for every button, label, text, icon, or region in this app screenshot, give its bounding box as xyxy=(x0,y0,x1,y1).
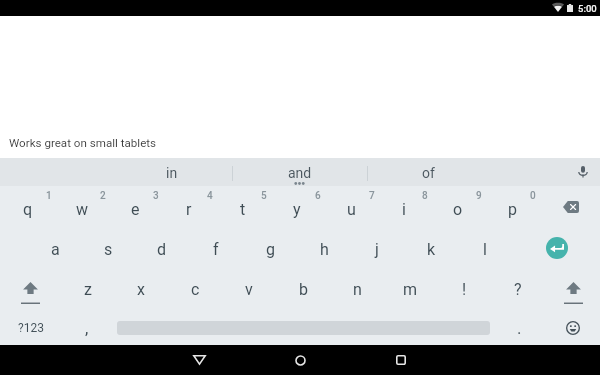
staticText: d xyxy=(157,240,167,259)
button[interactable]: in xyxy=(112,158,232,186)
staticText: ! xyxy=(462,280,467,299)
button[interactable]: r xyxy=(162,186,216,226)
staticText: 5 xyxy=(261,190,267,202)
button[interactable]: y xyxy=(270,186,324,226)
staticText: 3 xyxy=(153,190,159,202)
button[interactable]: Shift xyxy=(3,266,57,306)
staticText: c xyxy=(191,280,200,299)
button[interactable]: u xyxy=(324,186,378,226)
staticText: f xyxy=(213,240,219,259)
staticText: and xyxy=(288,165,312,181)
button[interactable]: Emoji xyxy=(550,306,596,346)
staticText: 5:00 xyxy=(578,3,597,14)
button[interactable]: k xyxy=(404,226,458,266)
button[interactable]: Back xyxy=(179,345,219,375)
button[interactable]: . xyxy=(499,306,539,345)
staticText: r xyxy=(186,200,192,219)
staticText: . xyxy=(517,318,522,338)
button[interactable]: o xyxy=(431,186,485,226)
button[interactable]: f xyxy=(189,226,243,266)
staticText: o xyxy=(453,200,463,219)
button[interactable]: g xyxy=(243,226,297,266)
staticText: v xyxy=(245,280,253,299)
button[interactable]: Home xyxy=(280,345,320,375)
staticText: k xyxy=(427,240,436,259)
staticText: b xyxy=(299,280,308,299)
staticText: i xyxy=(402,200,406,219)
button[interactable]: Enter xyxy=(530,226,584,266)
staticText: 8 xyxy=(422,190,428,202)
staticText: 0 xyxy=(530,190,536,202)
button[interactable]: l xyxy=(458,226,512,266)
staticText: ?123 xyxy=(18,321,44,335)
staticText: w xyxy=(76,200,89,219)
button[interactable]: v xyxy=(222,266,276,306)
button[interactable]: t xyxy=(216,186,270,226)
button[interactable]: n xyxy=(330,266,384,306)
staticText: 7 xyxy=(369,190,375,202)
button[interactable]: Voice input xyxy=(489,158,600,186)
button[interactable]: of xyxy=(367,158,489,186)
button[interactable]: w xyxy=(55,186,109,226)
staticText: 1 xyxy=(46,190,52,202)
staticText: 9 xyxy=(476,190,482,202)
staticText: ? xyxy=(514,280,522,299)
button[interactable]: j xyxy=(350,226,404,266)
button[interactable]: m xyxy=(383,266,437,306)
staticText: q xyxy=(23,200,33,219)
button[interactable]: h xyxy=(297,226,351,266)
button[interactable]: s xyxy=(81,226,135,266)
staticText: z xyxy=(84,280,92,299)
staticText: e xyxy=(131,200,140,219)
staticText: h xyxy=(320,240,329,259)
button[interactable]: Shift xyxy=(546,266,600,306)
staticText: t xyxy=(240,200,246,219)
button[interactable]: x xyxy=(114,266,168,306)
button[interactable]: Space xyxy=(117,316,490,339)
button[interactable]: ? xyxy=(491,266,545,306)
staticText: 6 xyxy=(315,190,321,202)
button[interactable]: and xyxy=(232,158,367,186)
staticText: a xyxy=(51,240,60,259)
button[interactable]: p xyxy=(485,186,539,226)
button[interactable]: , xyxy=(67,306,107,345)
button[interactable]: b xyxy=(276,266,330,306)
staticText: x xyxy=(137,280,145,299)
button[interactable]: a xyxy=(28,226,82,266)
staticText: g xyxy=(266,240,275,259)
staticText: of xyxy=(422,165,435,181)
staticText: m xyxy=(403,280,418,299)
button[interactable]: e xyxy=(108,186,162,226)
button[interactable]: d xyxy=(135,226,189,266)
button[interactable]: Recents xyxy=(381,345,421,375)
staticText: Works great on small tablets xyxy=(9,136,157,150)
button[interactable]: i xyxy=(377,186,431,226)
button[interactable]: ?123 xyxy=(0,306,62,345)
button[interactable]: z xyxy=(61,266,115,306)
staticText: 2 xyxy=(100,190,106,202)
button[interactable]: ! xyxy=(437,266,491,306)
button[interactable]: Backspace xyxy=(544,186,598,226)
staticText: j xyxy=(375,240,379,259)
staticText: l xyxy=(483,240,487,259)
staticText: u xyxy=(347,200,356,219)
staticText: y xyxy=(293,200,301,219)
staticText: n xyxy=(353,280,362,299)
staticText: in xyxy=(166,165,178,181)
staticText: 4 xyxy=(207,190,213,202)
staticText: , xyxy=(85,318,89,338)
button[interactable]: q xyxy=(1,186,55,226)
button[interactable]: c xyxy=(168,266,222,306)
staticText: s xyxy=(104,240,113,259)
staticText: p xyxy=(508,200,517,219)
